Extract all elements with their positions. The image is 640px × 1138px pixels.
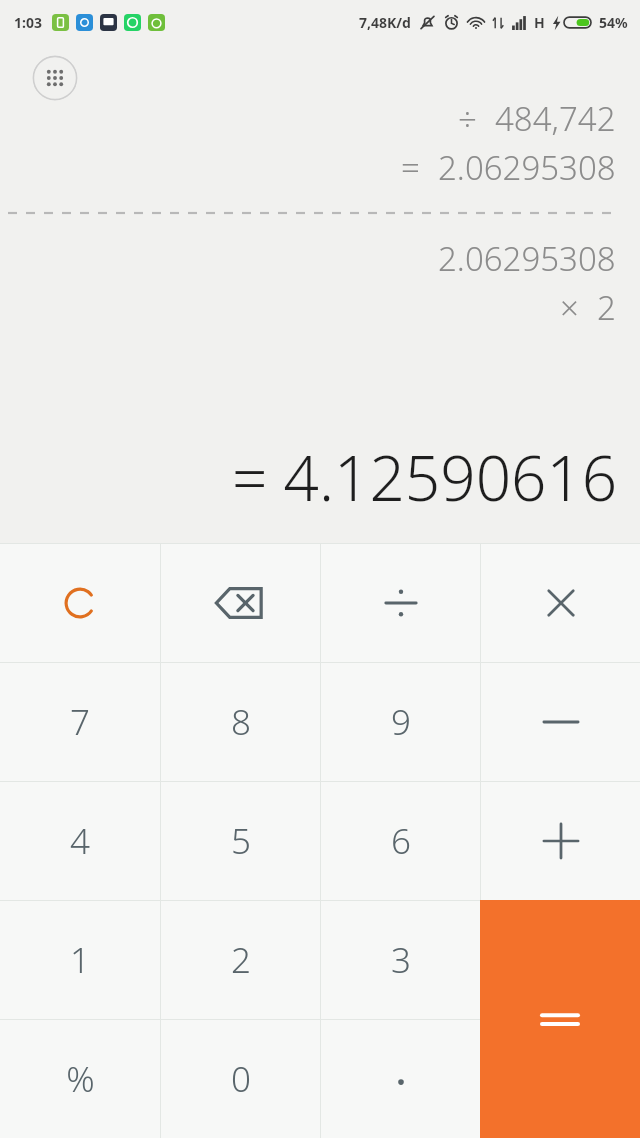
staticText: 7,48K/d [359,13,411,32]
staticText: 1 [70,936,90,984]
button[interactable]: 4 [0,782,160,900]
other: Multiply [543,585,579,621]
staticText: 3 [391,936,411,984]
staticText: 2 [231,936,251,984]
other: Minus [542,712,580,732]
staticText: H [534,13,545,32]
staticText: 54% [599,13,628,32]
staticText: 9 [391,698,411,746]
button[interactable]: 7 [0,663,160,781]
other: Clear [59,582,101,624]
button[interactable]: % [0,1020,160,1138]
staticText: 4 [70,817,90,865]
button[interactable]: 9 [321,663,480,781]
staticText: % [66,1055,95,1103]
button[interactable]: 8 [161,663,320,781]
button[interactable]: Plus [481,782,640,900]
staticText: 1:03 [14,13,42,32]
button[interactable]: Backspace [161,544,320,662]
button[interactable]: Decimal point [321,1020,480,1138]
staticText: = [401,145,420,190]
button[interactable]: Clear [0,544,160,662]
staticText: 2.06295308 [438,236,616,281]
button[interactable]: 1 [0,901,160,1019]
staticText: 6 [391,817,411,865]
button[interactable]: Minus [481,663,640,781]
button[interactable]: 2 [161,901,320,1019]
other: Plus [542,822,580,860]
staticText: 7 [70,698,90,746]
staticText: 2.06295308 [438,145,616,190]
staticText: 0 [231,1055,251,1103]
button[interactable]: Multiply [481,544,640,662]
staticText: × [560,285,579,330]
button[interactable]: 5 [161,782,320,900]
button[interactable]: App menu [32,55,78,101]
other: Backspace [213,584,269,622]
button[interactable]: 6 [321,782,480,900]
button[interactable]: 0 [161,1020,320,1138]
other: Divide [381,583,421,623]
button[interactable]: 3 [321,901,480,1019]
other: Decimal point [394,1072,408,1086]
button[interactable]: Equals [480,900,640,1138]
staticText: 5 [231,817,251,865]
staticText: 2 [597,285,616,330]
staticText: ÷ [458,96,477,141]
staticText: 8 [231,698,251,746]
button[interactable]: Divide [321,544,480,662]
staticText: = 4.12590616 [232,435,618,519]
staticText: 484,742 [495,96,616,141]
